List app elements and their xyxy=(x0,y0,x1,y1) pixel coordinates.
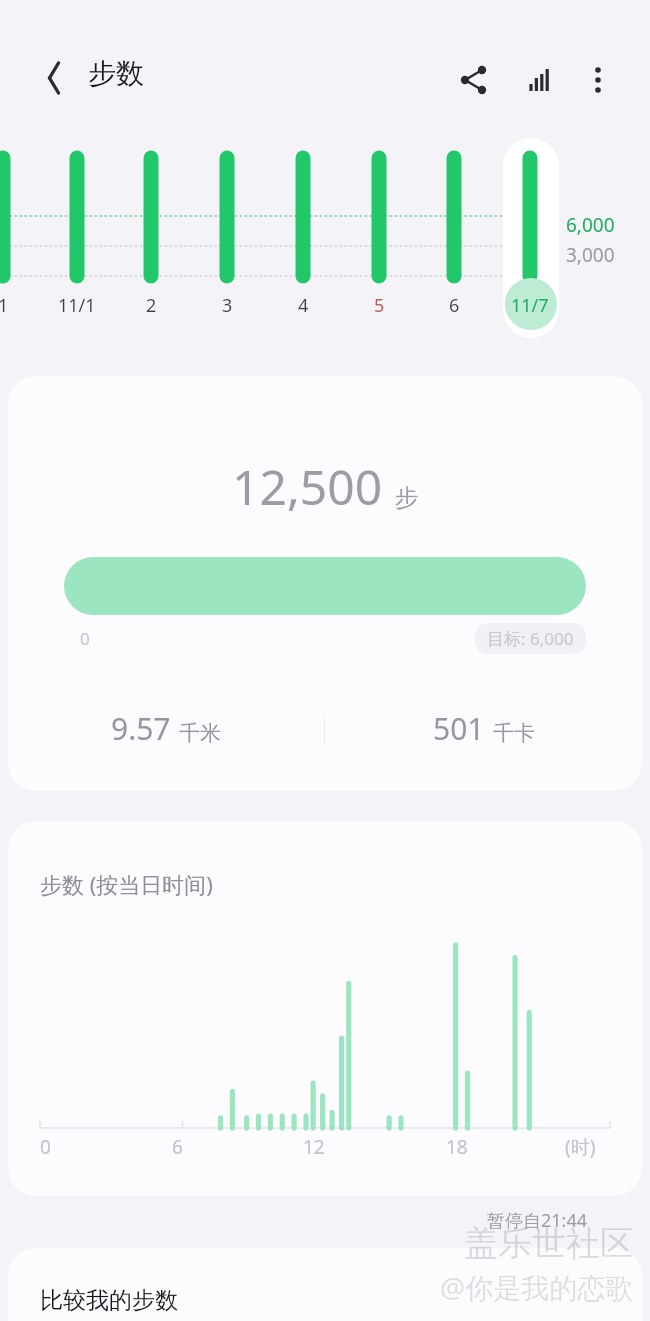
button[interactable]: 比较我的步数 xyxy=(8,1248,642,1321)
staticText: 9.57 xyxy=(111,708,171,749)
staticText: 5 xyxy=(374,293,385,318)
button[interactable]: Share xyxy=(448,54,500,106)
staticText: 12,500 xyxy=(232,454,383,519)
staticText: (时) xyxy=(565,1134,596,1160)
staticText: 千米 xyxy=(179,720,221,746)
staticText: 目标: 6,000 xyxy=(487,627,574,650)
staticText: 步数 xyxy=(88,56,144,91)
button[interactable]: 12,500 xyxy=(8,376,642,791)
button[interactable]: More options xyxy=(572,54,624,106)
staticText: 12 xyxy=(303,1134,325,1160)
button[interactable]: Back xyxy=(28,52,80,104)
staticText: 步 xyxy=(395,483,419,513)
staticText: 11/7 xyxy=(511,293,549,318)
staticText: 比较我的步数 xyxy=(40,1286,178,1315)
staticText: 3 xyxy=(222,293,233,318)
staticText: 4 xyxy=(298,293,309,318)
staticText: 步数 (按当日时间) xyxy=(40,869,213,899)
staticText: 11/1 xyxy=(58,293,96,318)
staticText: 2 xyxy=(146,293,157,318)
staticText: 暂停自21:44 xyxy=(487,1208,588,1233)
button[interactable]: 步数 (按当日时间) xyxy=(8,821,642,1196)
staticText: 0 xyxy=(80,627,90,650)
button[interactable] xyxy=(503,138,559,338)
staticText: 6 xyxy=(172,1134,183,1160)
staticText: 1 xyxy=(0,293,9,318)
staticText: @你是我的恋歌 xyxy=(440,1268,634,1306)
staticText: 18 xyxy=(446,1134,468,1160)
staticText: 6 xyxy=(449,293,460,318)
staticText: 千卡 xyxy=(493,720,535,746)
staticText: 6,000 xyxy=(566,212,615,238)
button[interactable]: Statistics xyxy=(514,54,566,106)
staticText: 盖乐世社区 xyxy=(464,1222,634,1265)
staticText: 3,000 xyxy=(566,242,615,268)
staticText: 501 xyxy=(433,708,485,749)
